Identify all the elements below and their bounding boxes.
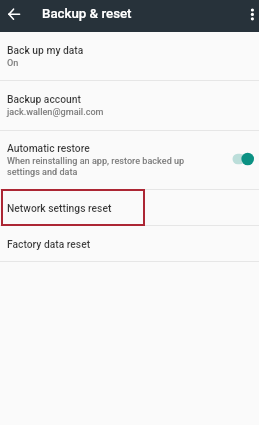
- button[interactable]: Back up my data: [0, 32, 259, 80]
- staticText: Factory data reset: [7, 238, 91, 250]
- button[interactable]: Network settings reset: [0, 190, 259, 225]
- staticText: Backup account: [7, 93, 81, 105]
- staticText: Network settings reset: [7, 202, 112, 214]
- button[interactable]: Automatic restore: [0, 131, 259, 189]
- button[interactable]: More options: [235, 0, 259, 32]
- staticText: Automatic restore: [7, 142, 90, 154]
- button[interactable]: Backup account: [0, 81, 259, 130]
- staticText: jack.wallen@gmail.com: [7, 107, 104, 118]
- staticText: On: [7, 58, 19, 69]
- button[interactable]: Automatic restore, on: [229, 151, 251, 167]
- staticText: Backup & reset: [42, 6, 132, 22]
- button[interactable]: Factory data reset: [0, 226, 259, 261]
- staticText: When reinstalling an app, restore backed…: [7, 156, 185, 178]
- button[interactable]: Navigate up: [0, 0, 28, 28]
- staticText: Back up my data: [7, 44, 84, 56]
